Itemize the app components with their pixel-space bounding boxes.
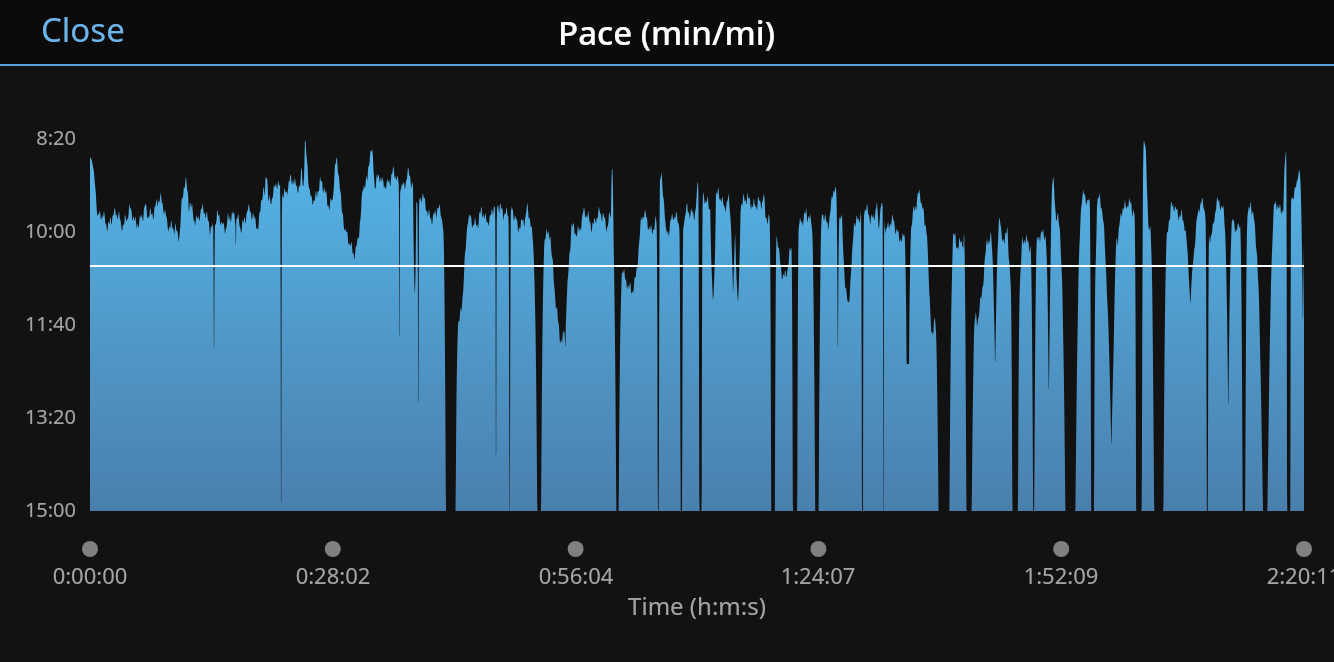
staticText: 1:24:07: [738, 560, 898, 590]
staticText: 1:52:09: [981, 560, 1141, 590]
staticText: Time (h:m:s): [97, 589, 1297, 622]
staticText: Close: [41, 7, 125, 51]
staticText: 8:20: [0, 124, 76, 151]
staticText: 2:20:11: [1224, 560, 1334, 590]
staticText: Pace (min/mi): [558, 10, 776, 55]
button[interactable]: Pace chart, 8:20 to 15:00 per mile: [90, 137, 1304, 511]
staticText: 10:00: [0, 217, 76, 244]
staticText: 0:00:00: [10, 560, 170, 590]
staticText: 15:00: [0, 496, 76, 523]
button[interactable]: Close: [0, 0, 149, 64]
staticText: 0:56:04: [496, 560, 656, 590]
staticText: 13:20: [0, 403, 76, 430]
staticText: 11:40: [0, 310, 76, 337]
staticText: 0:28:02: [253, 560, 413, 590]
